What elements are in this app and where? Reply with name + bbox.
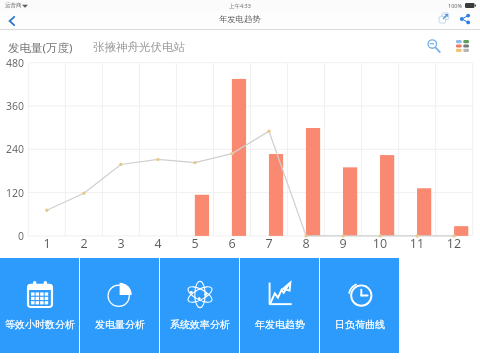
button[interactable]: Back bbox=[2, 11, 22, 31]
button[interactable]: Open in new window bbox=[437, 11, 451, 25]
staticText: 上午4:33 bbox=[229, 2, 251, 10]
staticText: 120 bbox=[0, 186, 24, 200]
staticText: 2 bbox=[72, 235, 96, 252]
staticText: 3 bbox=[109, 235, 133, 252]
button[interactable]: Zoom bbox=[424, 36, 444, 56]
staticText: 8 bbox=[294, 235, 318, 252]
staticText: 年发电趋势 bbox=[219, 14, 261, 24]
button[interactable]: 系统效率分析 bbox=[160, 258, 239, 353]
button[interactable]: 等效小时数分析 bbox=[0, 258, 79, 353]
staticText: 年发电趋势 bbox=[255, 318, 305, 331]
button[interactable]: Table view bbox=[452, 36, 472, 56]
staticText: 240 bbox=[0, 142, 24, 156]
staticText: 7 bbox=[257, 235, 281, 252]
staticText: 11 bbox=[405, 235, 429, 252]
staticText: 4 bbox=[146, 235, 170, 252]
staticText: 12 bbox=[442, 235, 466, 252]
staticText: 发电量(万度) bbox=[8, 40, 73, 56]
button[interactable]: 年发电趋势 bbox=[240, 258, 319, 353]
staticText: 0 bbox=[0, 229, 24, 243]
button[interactable]: 日负荷曲线 bbox=[320, 258, 399, 353]
staticText: 480 bbox=[0, 56, 24, 70]
staticText: 5 bbox=[183, 235, 207, 252]
staticText: 系统效率分析 bbox=[170, 318, 230, 331]
staticText: 10 bbox=[368, 235, 392, 252]
staticText: 发电量分析 bbox=[95, 318, 145, 331]
staticText: 6 bbox=[220, 235, 244, 252]
button[interactable]: 发电量分析 bbox=[80, 258, 159, 353]
button[interactable]: Share bbox=[458, 12, 471, 25]
staticText: 等效小时数分析 bbox=[5, 318, 75, 331]
staticText: 100% bbox=[448, 2, 463, 9]
staticText: 1 bbox=[35, 235, 59, 252]
staticText: 日负荷曲线 bbox=[335, 318, 385, 331]
staticText: 9 bbox=[331, 235, 355, 252]
staticText: 运营商 bbox=[5, 2, 22, 9]
staticText: 张掖神舟光伏电站 bbox=[93, 40, 185, 54]
staticText: 360 bbox=[0, 99, 24, 113]
